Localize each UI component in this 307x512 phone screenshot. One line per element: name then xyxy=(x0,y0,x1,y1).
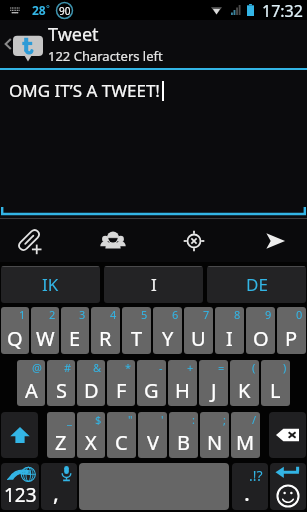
button[interactable]: Mention people xyxy=(93,219,133,262)
staticText: _ xyxy=(67,412,72,427)
button[interactable]: 4 xyxy=(91,307,120,354)
button[interactable]: Attach photo xyxy=(10,219,50,262)
staticText: 7 xyxy=(203,307,210,322)
button[interactable]: 6 xyxy=(153,307,182,354)
staticText: V xyxy=(147,429,159,456)
button[interactable]: _ xyxy=(47,412,75,458)
staticText: @ xyxy=(32,360,42,375)
staticText: B xyxy=(177,429,190,456)
button[interactable]: # xyxy=(47,360,75,406)
button[interactable]: + xyxy=(168,360,197,406)
button[interactable]: 0 xyxy=(277,307,306,354)
button[interactable]: Symbols xyxy=(1,463,39,510)
staticText: " xyxy=(128,412,133,427)
button[interactable]: 7 xyxy=(184,307,213,354)
button[interactable]: ; xyxy=(200,412,229,458)
staticText: . xyxy=(244,477,250,507)
staticText: 5 xyxy=(141,307,148,322)
staticText: 4 xyxy=(110,307,117,322)
staticText: N xyxy=(207,429,223,456)
staticText: O xyxy=(253,325,269,352)
staticText: C xyxy=(115,429,128,456)
staticText: 2 xyxy=(49,307,56,322)
button[interactable]: 8 xyxy=(215,307,244,354)
button[interactable]: * xyxy=(107,360,135,406)
staticText: 17:32 xyxy=(262,0,303,20)
staticText: ' xyxy=(161,412,164,427)
staticText: E xyxy=(69,325,81,352)
staticText: L xyxy=(270,377,281,404)
staticText: + xyxy=(187,360,194,375)
staticText: * xyxy=(125,360,132,375)
staticText: Q xyxy=(7,325,23,352)
button[interactable]: ' xyxy=(138,412,167,458)
staticText: X xyxy=(85,429,97,456)
staticText: 28 xyxy=(32,2,46,18)
staticText: IK xyxy=(42,273,59,296)
staticText: F xyxy=(116,377,127,404)
button[interactable]: 2 xyxy=(31,307,59,354)
staticText: $ xyxy=(95,412,102,427)
staticText: J xyxy=(211,377,217,404)
staticText: I xyxy=(226,325,233,352)
button[interactable]: - xyxy=(137,360,166,406)
staticText: / xyxy=(252,412,257,427)
staticText: .!? xyxy=(249,466,263,485)
staticText: & xyxy=(93,360,102,375)
staticText: ° xyxy=(46,2,50,14)
staticText: - xyxy=(159,360,163,375)
staticText: : xyxy=(192,412,195,427)
button[interactable]: IK xyxy=(1,266,100,303)
staticText: 9 xyxy=(265,307,272,322)
staticText: K xyxy=(238,377,251,404)
button[interactable]: Add location xyxy=(174,219,214,262)
staticText: P xyxy=(285,325,298,352)
other: Back xyxy=(4,33,12,55)
staticText: Y xyxy=(162,325,174,352)
staticText: 1 xyxy=(19,307,26,322)
button[interactable]: ) xyxy=(261,360,290,406)
button[interactable]: .!? xyxy=(232,463,268,510)
staticText: W xyxy=(36,325,55,352)
staticText: 90 xyxy=(59,4,71,18)
staticText: 3 xyxy=(79,307,86,322)
staticText: DE xyxy=(246,273,268,296)
staticText: , xyxy=(53,477,59,507)
staticText: 0 xyxy=(296,307,303,322)
button[interactable]: @ xyxy=(17,360,45,406)
button[interactable]: 3 xyxy=(61,307,89,354)
button[interactable]: / xyxy=(231,412,260,458)
staticText: 123 xyxy=(4,482,37,508)
button[interactable]: & xyxy=(77,360,105,406)
staticText: A xyxy=(25,377,38,404)
button[interactable]: ( xyxy=(230,360,259,406)
staticText: ( xyxy=(252,360,256,375)
button[interactable]: Space xyxy=(79,463,229,510)
staticText: R xyxy=(99,325,112,352)
staticText: ) xyxy=(283,360,287,375)
button[interactable]: Back xyxy=(0,20,307,68)
staticText: U xyxy=(191,325,206,352)
button[interactable]: $ xyxy=(77,412,105,458)
button[interactable]: " xyxy=(107,412,136,458)
button[interactable]: Enter xyxy=(270,463,306,510)
button[interactable]: 1 xyxy=(1,307,29,354)
staticText: 122 Characters left xyxy=(48,47,163,65)
button[interactable]: Backspace xyxy=(269,412,306,458)
staticText: # xyxy=(64,360,72,375)
button[interactable]: : xyxy=(169,412,198,458)
staticText: I xyxy=(151,273,157,296)
button[interactable]: = xyxy=(199,360,228,406)
button[interactable]: I xyxy=(104,266,203,303)
button[interactable]: 9 xyxy=(246,307,275,354)
button[interactable]: DE xyxy=(207,266,306,303)
staticText: T xyxy=(131,325,143,352)
staticText: Z xyxy=(55,429,67,456)
button[interactable]: 5 xyxy=(122,307,151,354)
staticText: M xyxy=(236,429,255,456)
staticText: H xyxy=(175,377,190,404)
button[interactable]: Shift xyxy=(1,412,38,458)
button[interactable]: , xyxy=(41,463,77,510)
button[interactable]: Send tweet xyxy=(255,219,295,262)
staticText: ; xyxy=(223,412,226,427)
